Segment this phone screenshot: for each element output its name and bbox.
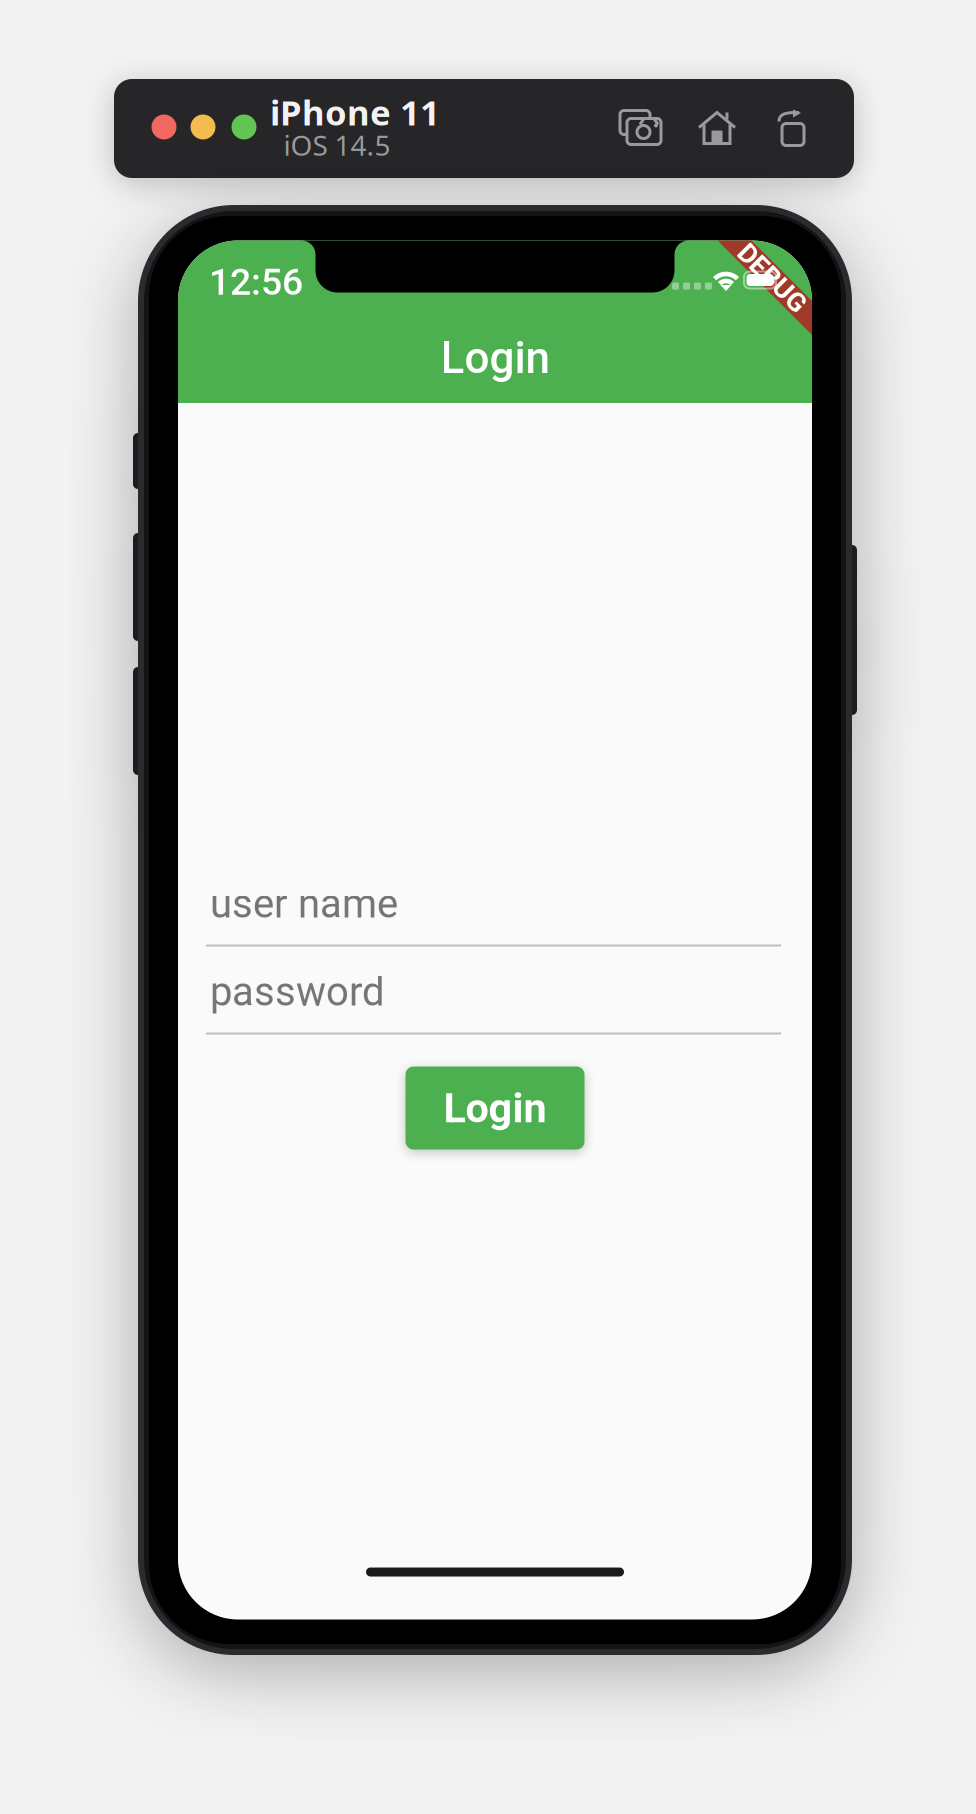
button[interactable]: Home xyxy=(698,110,736,146)
button[interactable]: Rotate xyxy=(777,109,807,147)
button[interactable]: password xyxy=(206,938,781,1034)
button[interactable]: Screenshot xyxy=(620,110,664,146)
staticText: user name xyxy=(210,880,398,927)
staticText: password xyxy=(210,968,385,1015)
button[interactable]: Minimize xyxy=(190,114,215,139)
button[interactable]: user name xyxy=(206,850,781,946)
staticText: Login xyxy=(443,1084,546,1132)
staticText: 12:56 xyxy=(209,260,303,304)
staticText: iOS 14.5 xyxy=(283,126,390,164)
staticText: Login xyxy=(440,332,549,384)
staticText: DEBUG xyxy=(729,262,814,294)
button[interactable]: Close xyxy=(151,114,176,139)
button[interactable]: Zoom xyxy=(231,114,256,139)
staticText: iPhone 11 xyxy=(270,89,440,135)
button[interactable]: Login xyxy=(405,1066,584,1149)
